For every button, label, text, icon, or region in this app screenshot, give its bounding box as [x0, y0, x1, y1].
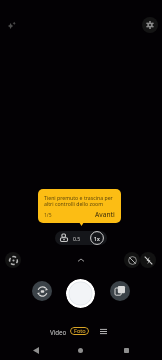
button[interactable]: AI enhance	[4, 18, 18, 32]
button[interactable]: Settings	[142, 17, 158, 33]
button[interactable]: Gallery	[110, 281, 130, 301]
staticText: Avanti	[95, 210, 115, 219]
button[interactable]: Foto	[70, 327, 89, 335]
staticText: 1x	[94, 235, 100, 242]
button[interactable]: Flash off	[140, 252, 156, 268]
staticText: Foto	[74, 327, 86, 335]
staticText: Video	[50, 328, 67, 336]
button[interactable]: Night mode off	[124, 252, 140, 268]
button[interactable]: Lens options	[5, 252, 21, 268]
button[interactable]: Video	[46, 326, 71, 338]
button[interactable]: 0.5	[55, 231, 107, 245]
button[interactable]: Tieni premuto e trascina per altri contr…	[38, 189, 121, 223]
staticText: 1/5	[44, 212, 52, 219]
button[interactable]: Switch camera	[32, 281, 52, 301]
staticText: Tieni premuto e trascina per altri contr…	[44, 194, 115, 208]
button[interactable]: More modes	[97, 324, 109, 338]
staticText: 0.5	[73, 235, 81, 242]
button[interactable]: Take photo	[66, 279, 95, 308]
